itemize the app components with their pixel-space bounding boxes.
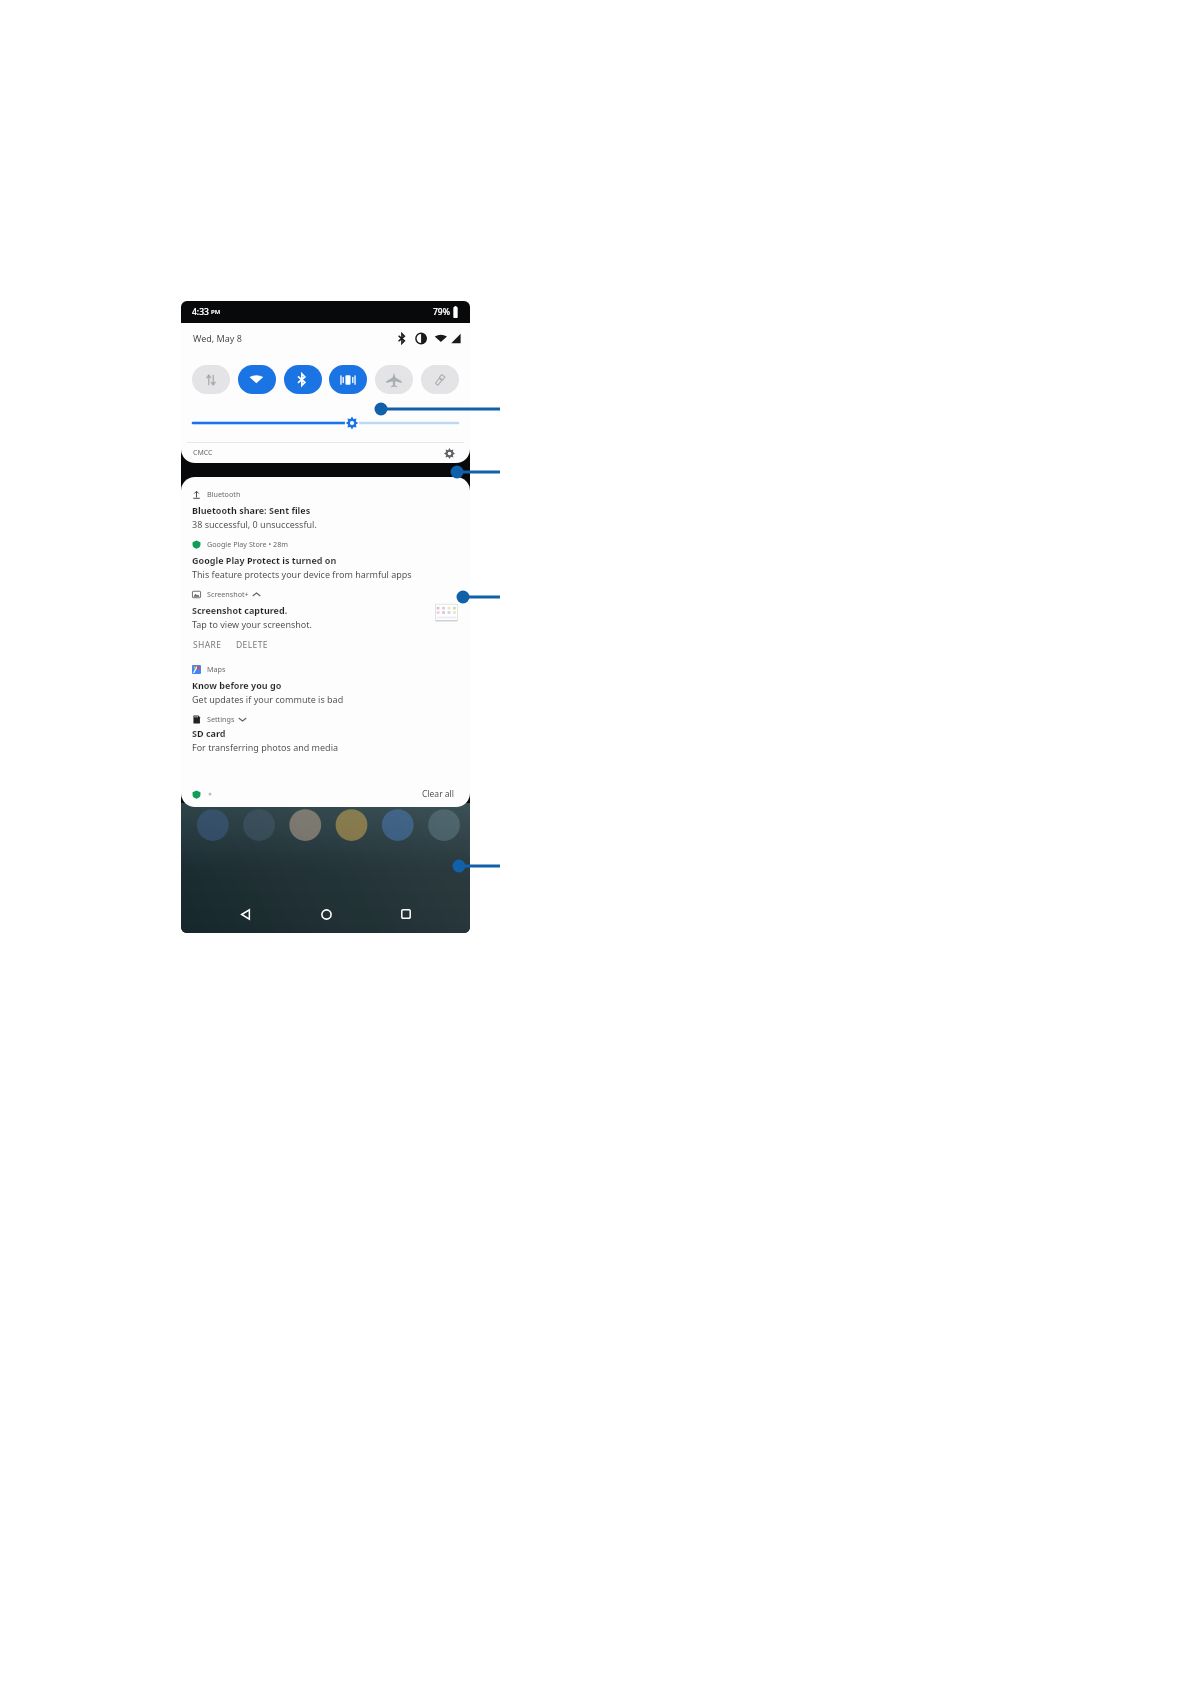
staticText: Screenshot captured. <box>192 604 288 616</box>
button[interactable]: Bluetooth <box>181 484 470 534</box>
staticText: Settings <box>207 714 235 724</box>
staticText: Google Play Protect is turned on <box>192 554 337 566</box>
button[interactable]: Settings <box>181 709 470 754</box>
button[interactable]: Screenshot+ <box>181 584 470 659</box>
button[interactable]: Clear all <box>418 785 459 803</box>
button[interactable]: Settings <box>440 444 458 462</box>
staticText: Bluetooth <box>207 489 241 499</box>
button[interactable]: Flashlight <box>420 364 460 394</box>
staticText: Tap to view your screenshot. <box>192 618 312 630</box>
button[interactable]: Vibrate <box>328 364 368 394</box>
staticText: 79% <box>433 306 450 318</box>
button[interactable]: Recent apps <box>389 897 423 931</box>
staticText: Bluetooth share: Sent files <box>192 504 311 516</box>
button[interactable]: Home <box>309 897 343 931</box>
button[interactable]: Brightness <box>181 405 470 441</box>
staticText: Google Play Store • 28m <box>207 539 289 549</box>
button[interactable]: Maps <box>181 659 470 709</box>
button[interactable]: DELETE <box>235 637 269 653</box>
staticText: Maps <box>207 664 226 674</box>
staticText: Wed, May 8 <box>193 332 242 344</box>
button[interactable]: Wi-Fi <box>237 364 277 394</box>
staticText: This feature protects your device from h… <box>192 568 412 580</box>
button[interactable]: SHARE <box>192 637 223 653</box>
staticText: CMCC <box>193 448 213 458</box>
staticText: Know before you go <box>192 679 282 691</box>
staticText: PM <box>211 308 221 316</box>
staticText: Get updates if your commute is bad <box>192 693 344 705</box>
staticText: Clear all <box>422 788 455 800</box>
button[interactable]: Bluetooth <box>283 364 323 394</box>
staticText: SHARE <box>193 639 222 651</box>
staticText: Screenshot+ <box>207 589 249 599</box>
staticText: DELETE <box>236 639 268 651</box>
staticText: 4:33 <box>192 306 209 318</box>
button[interactable]: Back <box>228 897 262 931</box>
staticText: For transferring photos and media <box>192 741 339 753</box>
button[interactable]: Airplane mode <box>374 364 414 394</box>
button[interactable]: Google Play Store • 28m <box>181 534 470 584</box>
staticText: 38 successful, 0 unsuccessful. <box>192 518 317 530</box>
staticText: SD card <box>192 727 226 739</box>
button[interactable]: Mobile data <box>191 364 231 394</box>
